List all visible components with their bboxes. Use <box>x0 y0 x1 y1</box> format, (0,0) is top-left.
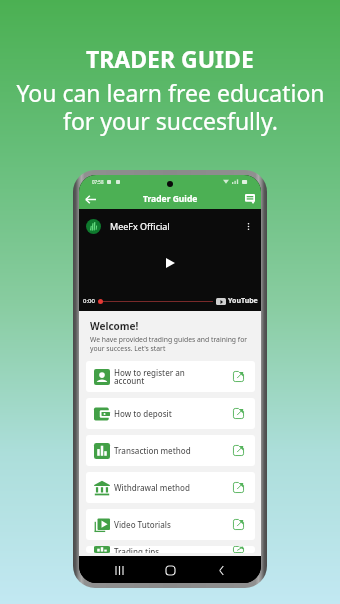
button[interactable]: Transaction method <box>86 435 255 466</box>
staticText: You can learn free education for your su… <box>16 77 325 137</box>
staticText: 0:00 <box>83 297 95 305</box>
button[interactable]: Play <box>159 252 181 274</box>
staticText: How to register an account <box>114 367 185 386</box>
staticText: 07:58 <box>92 179 104 185</box>
staticText: TRADER GUIDE <box>86 43 254 74</box>
staticText: Trader Guide <box>143 193 198 205</box>
button[interactable]: Withdrawal method <box>86 472 255 503</box>
button[interactable]: Recents <box>108 559 130 581</box>
button[interactable]: More options <box>242 220 254 232</box>
button[interactable]: Home <box>159 559 181 581</box>
staticText: We have provided trading guides and trai… <box>90 335 248 353</box>
button[interactable]: Chat <box>242 191 258 207</box>
staticText: MeeFx Official <box>110 220 170 232</box>
staticText: Video Tutorials <box>114 519 171 530</box>
staticText: Withdrawal method <box>114 482 190 493</box>
button[interactable]: Back <box>210 559 232 581</box>
button[interactable]: Trading tips <box>86 546 255 553</box>
staticText: Transaction method <box>114 445 191 456</box>
staticText: YouTube <box>228 296 258 306</box>
button[interactable]: How to register an account <box>86 361 255 392</box>
button[interactable]: Back <box>83 192 97 206</box>
button[interactable]: How to deposit <box>86 398 255 429</box>
button[interactable]: Video Tutorials <box>86 509 255 540</box>
staticText: Trading tips <box>114 546 160 553</box>
staticText: Welcome! <box>90 319 139 333</box>
staticText: How to deposit <box>114 408 172 419</box>
